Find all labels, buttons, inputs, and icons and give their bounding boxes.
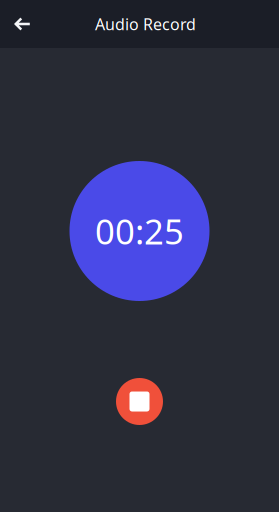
staticText: 00:25 — [95, 208, 184, 254]
button[interactable]: Back — [0, 0, 45, 48]
staticText: Audio Record — [95, 13, 196, 35]
button[interactable]: Stop recording — [116, 378, 163, 425]
